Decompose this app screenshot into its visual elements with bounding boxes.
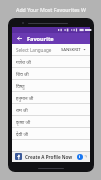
staticText: SANSKRIT: [61, 47, 81, 53]
button[interactable]: कृष्ण जी: [12, 116, 90, 127]
staticText: हनुमान जी: [16, 95, 34, 101]
button[interactable]: Create A Profile Now: [12, 151, 90, 162]
staticText: राम जी: [16, 107, 28, 113]
staticText: देवी जी: [16, 131, 28, 137]
other: Ad info: [77, 154, 83, 160]
staticText: शिव जी: [16, 71, 29, 77]
staticText: Add Your Most Favourites W: [16, 6, 86, 13]
button[interactable]: देवी जी: [12, 128, 90, 139]
staticText: i: [79, 154, 81, 160]
staticText: Select Language: [16, 47, 52, 53]
button[interactable]: गणेश जी: [12, 56, 90, 67]
staticText: गणेश जी: [16, 59, 31, 65]
staticText: कृष्ण जी: [16, 119, 31, 125]
button[interactable]: शिव जी: [12, 68, 90, 79]
staticText: Create A Profile Now: [25, 154, 73, 160]
button[interactable]: Select Language: [12, 44, 90, 55]
staticText: विष्णु: [16, 83, 25, 89]
button[interactable]: राम जी: [12, 104, 90, 115]
button[interactable]: Back: [15, 34, 24, 43]
staticText: Favourite: [27, 35, 54, 43]
button[interactable]: हनुमान जी: [12, 92, 90, 103]
button[interactable]: विष्णु: [12, 80, 90, 91]
